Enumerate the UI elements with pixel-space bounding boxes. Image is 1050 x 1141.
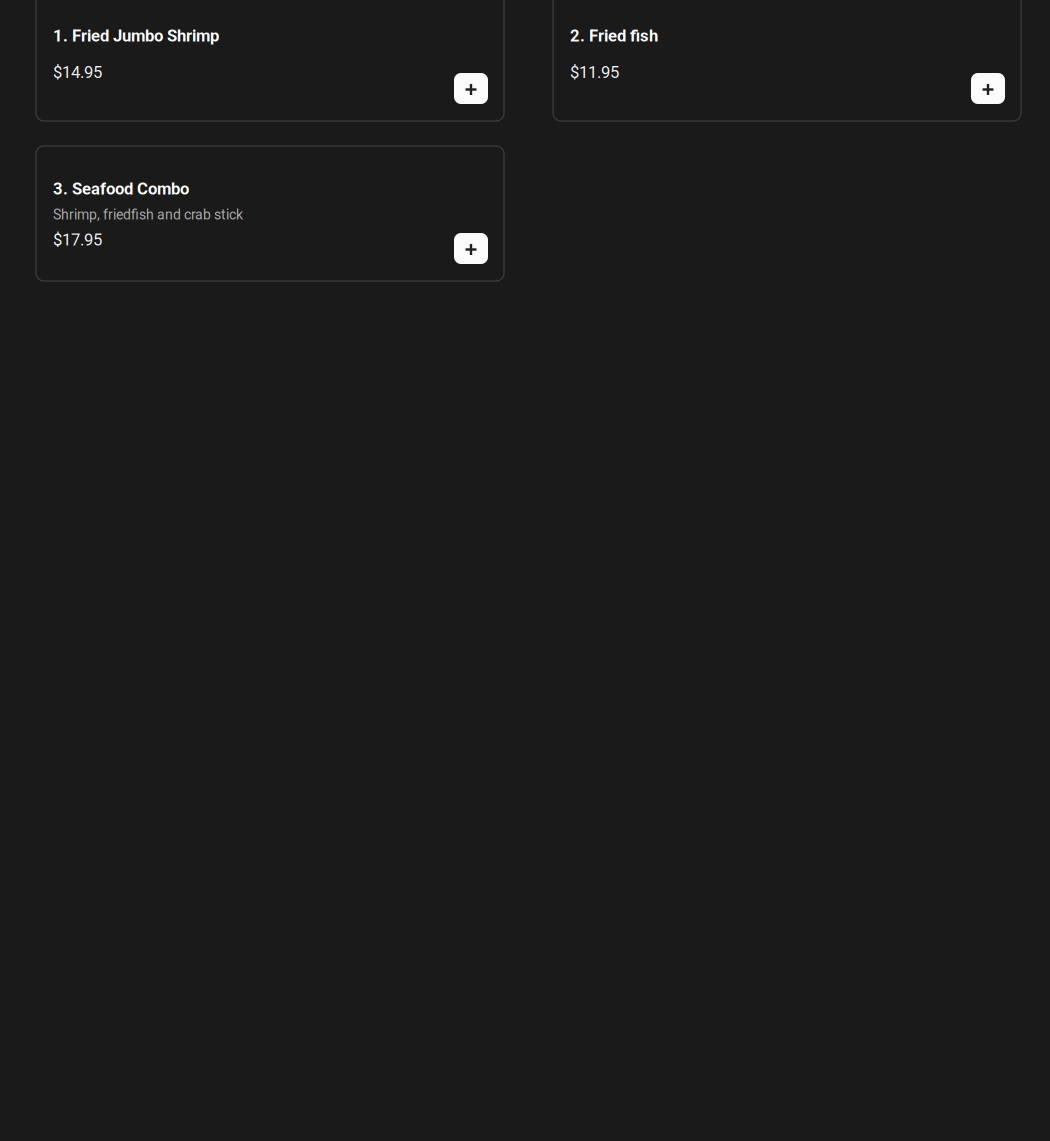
- staticText: 3. Seafood Combo: [53, 179, 189, 198]
- button[interactable]: Add to order: [454, 73, 488, 104]
- button[interactable]: Add to order: [971, 73, 1005, 104]
- staticText: $17.95: [53, 230, 102, 249]
- staticText: $14.95: [53, 62, 102, 82]
- button[interactable]: 2. Fried fish: [553, 0, 1021, 121]
- staticText: Shrimp, friedfish and crab stick: [53, 206, 243, 223]
- staticText: 2. Fried fish: [570, 26, 658, 45]
- staticText: $11.95: [570, 62, 619, 82]
- button[interactable]: Add to order: [454, 233, 488, 264]
- button[interactable]: 3. Seafood Combo: [36, 146, 504, 281]
- staticText: 1. Fried Jumbo Shrimp: [53, 26, 219, 45]
- button[interactable]: 1. Fried Jumbo Shrimp: [36, 0, 504, 121]
